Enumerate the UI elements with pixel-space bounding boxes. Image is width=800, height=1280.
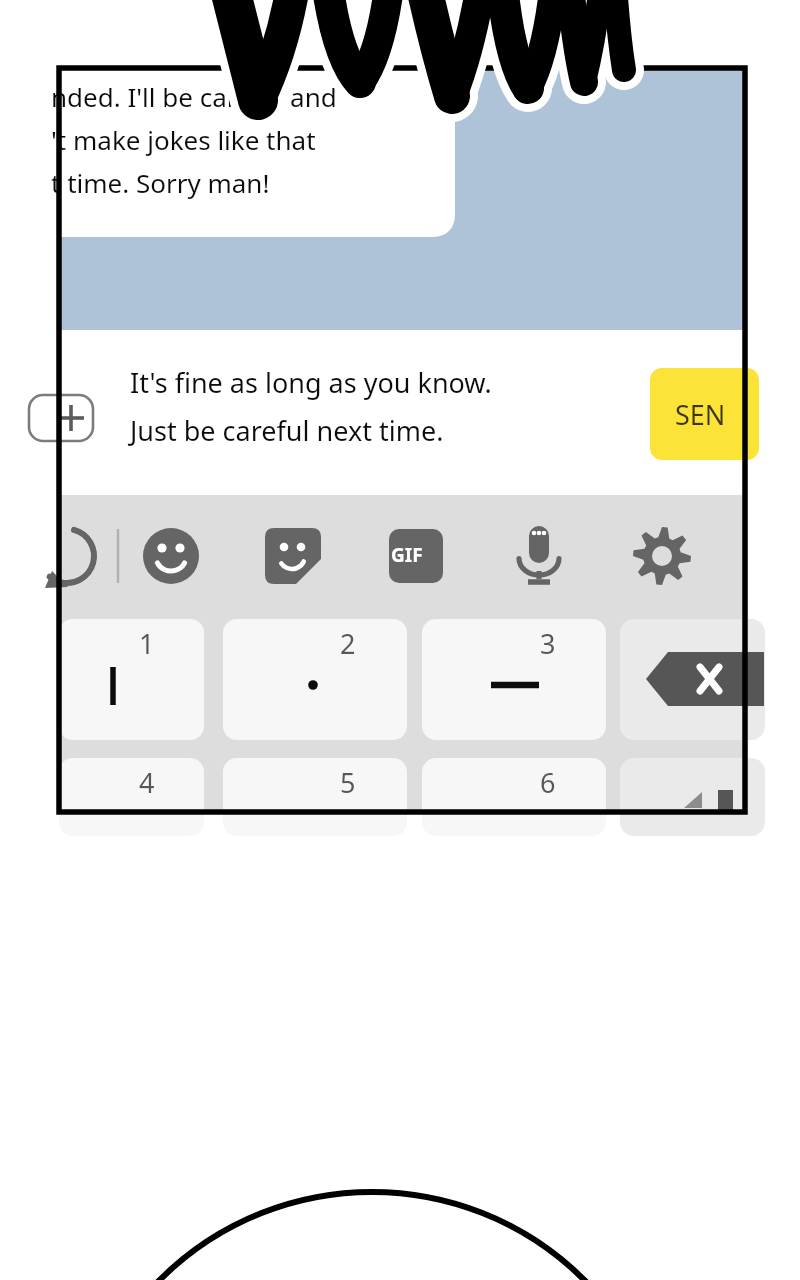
button[interactable]: Attach [59, 395, 95, 441]
staticText: nded. I'll be careful and 't make jokes … [51, 79, 337, 200]
staticText: 4 [139, 764, 155, 801]
button[interactable]: Voice input [509, 526, 569, 586]
button[interactable]: SEN [650, 368, 750, 460]
button[interactable]: Settings [632, 526, 692, 586]
staticText: GIF [391, 542, 423, 568]
staticText: SEN [675, 396, 726, 433]
button[interactable]: 6 [527, 761, 569, 803]
button[interactable]: It's fine as long as you know. Just be c… [130, 364, 640, 474]
button[interactable]: 2 [327, 622, 369, 664]
staticText: 3 [540, 625, 556, 662]
staticText: 1 [139, 625, 155, 662]
button[interactable]: Emoji [141, 526, 201, 586]
button[interactable]: 5 [327, 761, 369, 803]
staticText: It's fine as long as you know. Just be c… [130, 364, 492, 449]
staticText: 5 [340, 764, 356, 801]
button[interactable]: Stickers [263, 526, 323, 586]
staticText: 6 [540, 764, 556, 801]
button[interactable]: Undo [88, 526, 148, 586]
staticText: 2 [340, 625, 356, 662]
button[interactable]: 4 [126, 761, 168, 803]
button[interactable]: GIF [386, 526, 446, 586]
button[interactable]: 3 [527, 622, 569, 664]
button[interactable]: 1 [126, 622, 168, 664]
